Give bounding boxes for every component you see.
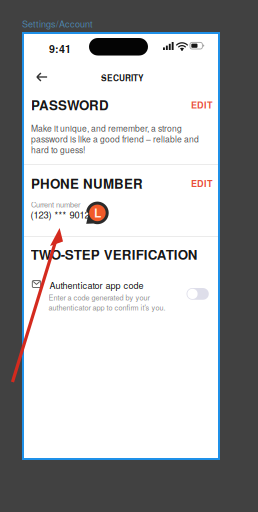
staticText: EDIT [191,177,213,190]
staticText: Authenticator app code [49,279,143,292]
staticText: EDIT [191,98,213,111]
staticText: L [94,204,101,221]
staticText: SECURITY [101,72,144,84]
button[interactable]: Authenticator app code [31,274,211,314]
staticText: 9:41 [49,41,71,56]
button[interactable]: EDIT [188,95,216,114]
staticText: TWO-STEP VERIFICATION [31,245,198,264]
staticText: Current number [31,199,80,210]
staticText: PHONE NUMBER [31,174,143,193]
staticText: (123) *** 9012 [30,208,89,221]
staticText: Enter a code generated by your authentic… [49,292,166,313]
staticText: PASSWORD [31,95,109,114]
button[interactable]: EDIT [188,174,216,193]
staticText: Settings/Account [22,17,93,30]
button[interactable]: Back [30,66,54,88]
staticText: Make it unique, and remember, a strong p… [31,122,199,156]
